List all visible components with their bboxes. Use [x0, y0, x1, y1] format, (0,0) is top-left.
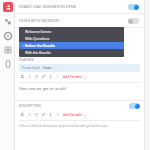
button[interactable]: Layout: [3, 45, 12, 54]
button[interactable]: DESCRIPTION: [19, 103, 140, 109]
button[interactable]: LOGIN WITH FACEBOOK: [15, 14, 144, 27]
button[interactable]: Clear formatting: [54, 111, 61, 118]
button[interactable]: Preview: [3, 59, 12, 68]
button[interactable]: Color: [47, 73, 54, 80]
staticText: Add Variable: [63, 113, 83, 117]
staticText: How can we get in touch?: [19, 86, 67, 91]
button[interactable]: Italic: [26, 73, 33, 80]
button[interactable]: Color: [47, 111, 54, 118]
button[interactable]: Welcome Screen: [19, 28, 124, 35]
button[interactable]: Bold: [19, 111, 26, 118]
staticText: With Questions: [25, 36, 50, 41]
button[interactable]: Settings: [3, 31, 12, 40]
staticText: Welcome Screen: [25, 29, 52, 34]
button[interactable]: Preset Style:: [19, 64, 140, 72]
button[interactable]: Underline: [33, 73, 40, 80]
button[interactable]: Contacts: [3, 2, 13, 12]
staticText: Before the Results: [25, 43, 56, 48]
staticText: Cover: [43, 66, 52, 70]
staticText: LOGIN WITH FACEBOOK: [19, 19, 60, 23]
button[interactable]: Italic: [26, 111, 33, 118]
button[interactable]: On: [129, 103, 140, 109]
staticText: DESCRIPTION: [19, 104, 41, 108]
button[interactable]: Before the Results: [19, 42, 124, 49]
button[interactable]: Add Variable: [63, 113, 87, 117]
staticText: Tell us a little bit about your project …: [19, 124, 109, 128]
button[interactable]: Connections: [3, 17, 12, 26]
button[interactable]: Off: [128, 18, 139, 24]
staticText: With the Results: [25, 50, 51, 55]
button[interactable]: With the Results: [19, 49, 124, 56]
button[interactable]: Bold: [19, 73, 26, 80]
button[interactable]: On: [128, 4, 139, 10]
staticText: ENABLE LEAD GENERATION FORM: [19, 5, 76, 9]
button[interactable]: Link: [40, 73, 47, 80]
button[interactable]: Add Variable: [63, 75, 87, 79]
staticText: Preset Style:: [22, 66, 41, 70]
button[interactable]: Link: [40, 111, 47, 118]
button[interactable]: Underline: [33, 111, 40, 118]
button[interactable]: ENABLE LEAD GENERATION FORM: [15, 0, 144, 13]
staticText: HEADING: [19, 58, 35, 62]
button[interactable]: Clear formatting: [54, 73, 61, 80]
staticText: Add Variable: [63, 75, 83, 79]
button[interactable]: With Questions: [19, 35, 124, 42]
